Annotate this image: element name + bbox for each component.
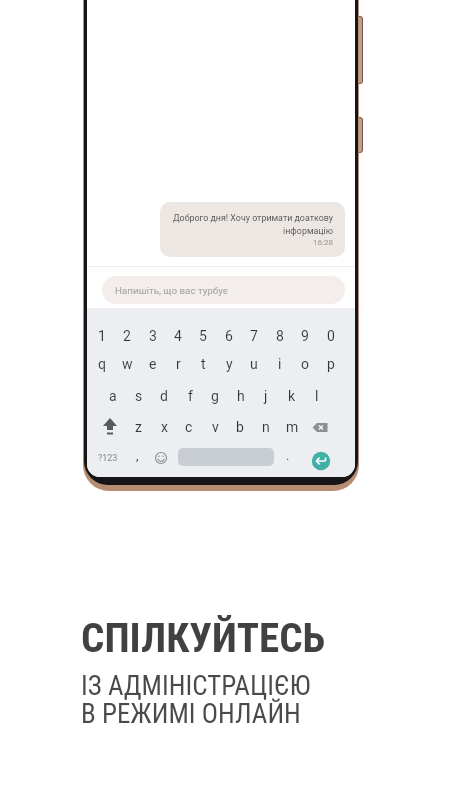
staticText: f (188, 388, 193, 404)
button[interactable]: r (162, 352, 194, 376)
button[interactable]: , (121, 443, 153, 467)
button[interactable]: 1 (87, 324, 118, 348)
button[interactable]: q (87, 352, 118, 376)
button[interactable]: a (97, 384, 129, 408)
button[interactable]: w (111, 352, 143, 376)
staticText: u (250, 356, 258, 372)
staticText: 1 (98, 328, 106, 344)
staticText: ІЗ АДМІНІСТРАЦІЄЮ В РЕЖИМІ ОНЛАЙН (81, 670, 311, 729)
button[interactable]: k (276, 384, 308, 408)
staticText: h (237, 388, 245, 404)
button[interactable]: l (301, 384, 333, 408)
staticText: d (160, 388, 168, 404)
button[interactable]: t (187, 352, 219, 376)
staticText: l (315, 388, 319, 404)
staticText: 5 (199, 328, 207, 344)
staticText: ?123 (98, 453, 118, 464)
staticText: g (211, 388, 219, 404)
staticText: . (286, 448, 290, 463)
button[interactable]: y (213, 352, 245, 376)
button[interactable]: o (289, 352, 321, 376)
button[interactable]: 9 (289, 324, 321, 348)
staticText: 8 (276, 328, 284, 344)
staticText: 7 (250, 328, 258, 344)
button[interactable]: x (148, 415, 180, 439)
button[interactable]: i (264, 352, 296, 376)
staticText: q (98, 356, 106, 372)
staticText: m (286, 419, 299, 435)
staticText: s (135, 388, 143, 404)
staticText: b (236, 419, 244, 435)
staticText: 3 (149, 328, 157, 344)
button[interactable]: g (199, 384, 231, 408)
button[interactable]: 5 (187, 324, 219, 348)
staticText: n (262, 419, 270, 435)
staticText: z (135, 419, 142, 435)
button[interactable]: b (224, 415, 256, 439)
button[interactable]: 6 (213, 324, 245, 348)
staticText: 2 (123, 328, 131, 344)
button[interactable]: 0 (315, 324, 347, 348)
button[interactable]: ?123 (92, 446, 124, 470)
button[interactable]: 2 (111, 324, 143, 348)
button[interactable]: j (250, 384, 282, 408)
staticText: v (212, 419, 219, 435)
staticText: Доброго дня! Хочу отримати доаткову інфо… (170, 213, 333, 236)
staticText: 9 (301, 328, 309, 344)
staticText: k (288, 388, 296, 404)
staticText: Напишіть, що вас турбує (115, 285, 229, 296)
staticText: x (161, 419, 168, 435)
button[interactable]: 4 (162, 324, 194, 348)
button[interactable]: p (315, 352, 347, 376)
button[interactable]: s (123, 384, 155, 408)
button[interactable]: n (250, 415, 282, 439)
staticText: a (109, 388, 117, 404)
button[interactable]: m (276, 415, 308, 439)
staticText: c (185, 419, 193, 435)
button[interactable]: c (173, 415, 205, 439)
button[interactable]: 7 (238, 324, 270, 348)
button[interactable]: d (148, 384, 180, 408)
button[interactable]: . (272, 443, 304, 467)
staticText: r (176, 356, 181, 372)
button[interactable]: Доброго дня! Хочу отримати доаткову інфо… (160, 202, 345, 257)
staticText: e (149, 356, 157, 372)
staticText: i (278, 356, 282, 372)
staticText: p (327, 356, 335, 372)
button[interactable]: h (225, 384, 257, 408)
button[interactable]: f (174, 384, 206, 408)
staticText: t (201, 356, 206, 372)
staticText: 4 (174, 328, 182, 344)
button[interactable]: v (199, 415, 231, 439)
staticText: j (264, 388, 268, 404)
button[interactable]: Напишіть, що вас турбує (102, 276, 345, 304)
staticText: , (136, 448, 139, 463)
button[interactable]: e (137, 352, 169, 376)
button[interactable]: 3 (137, 324, 169, 348)
staticText: o (301, 356, 309, 372)
button[interactable]: 8 (264, 324, 296, 348)
staticText: СПІЛКУЙТЕСЬ (81, 614, 326, 662)
staticText: 6 (225, 328, 233, 344)
button[interactable]: u (238, 352, 270, 376)
staticText: w (122, 356, 133, 372)
button[interactable]: z (122, 415, 154, 439)
staticText: y (226, 356, 233, 372)
staticText: 0 (327, 328, 335, 344)
button[interactable] (178, 448, 274, 466)
staticText: 16:28 (170, 238, 333, 247)
